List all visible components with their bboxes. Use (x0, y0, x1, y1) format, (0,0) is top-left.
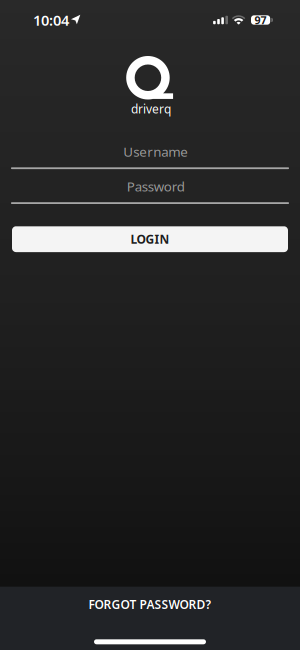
staticText: Password (127, 177, 185, 195)
staticText: 10:04 (33, 10, 69, 30)
staticText: 97 (255, 13, 267, 27)
staticText: driverq (131, 101, 171, 117)
staticText: FORGOT PASSWORD? (88, 596, 211, 612)
staticText: LOGIN (130, 231, 169, 247)
button[interactable]: LOGIN (12, 226, 288, 252)
button[interactable]: FORGOT PASSWORD? (0, 587, 300, 650)
staticText: Username (123, 143, 188, 160)
